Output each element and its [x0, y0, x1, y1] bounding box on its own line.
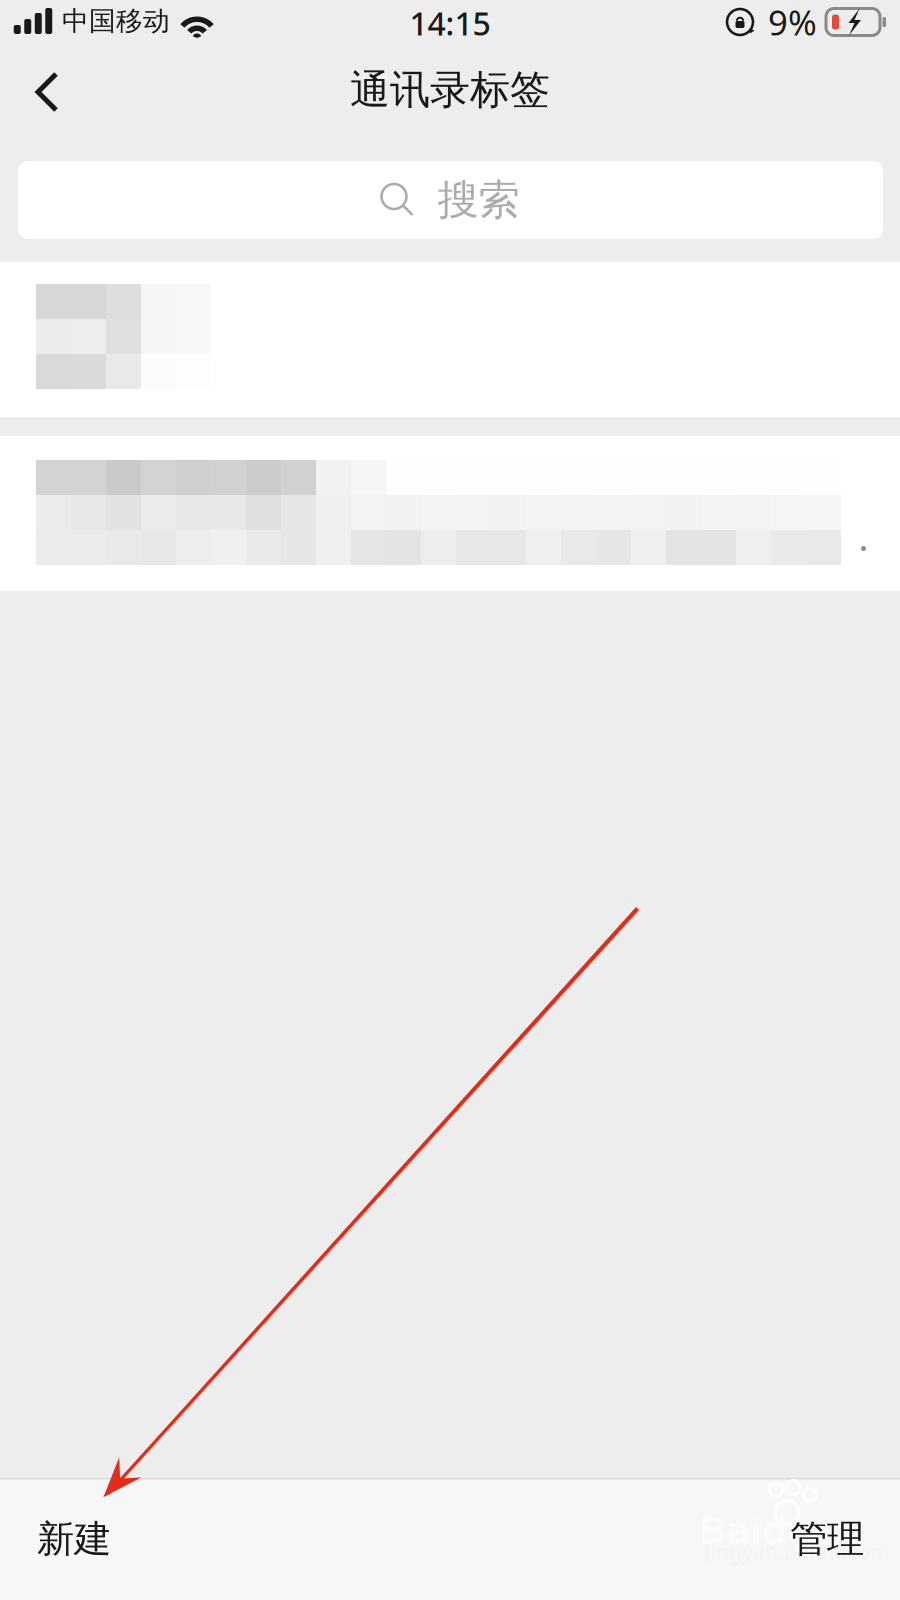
button[interactable]: 管理 [760, 1494, 900, 1584]
staticText: 9% [768, 0, 817, 45]
staticText: Baidu [699, 1502, 813, 1555]
staticText: 通讯录标签 [350, 65, 550, 114]
staticText: 14:15 [409, 2, 490, 44]
button[interactable]: 新建 [0, 1494, 141, 1584]
staticText: 管理 [790, 1516, 864, 1562]
button[interactable]: 返回 [0, 54, 95, 130]
staticText: 中国移动 [62, 5, 170, 37]
staticText: jingyan.baidu.com [704, 1537, 890, 1566]
button[interactable]: 搜索 [18, 161, 883, 239]
staticText: 搜索 [437, 175, 519, 225]
button[interactable] [0, 436, 900, 591]
button[interactable] [0, 262, 900, 417]
staticText: 新建 [37, 1516, 111, 1562]
